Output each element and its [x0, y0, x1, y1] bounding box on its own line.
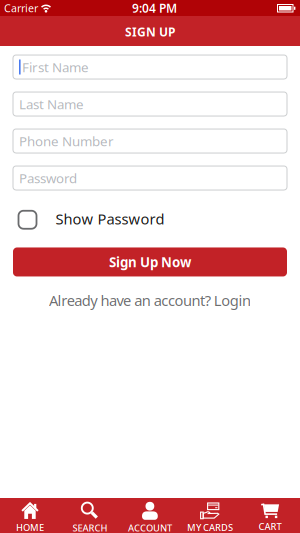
button[interactable]: First Name — [13, 55, 287, 79]
button[interactable]: HOME — [0, 498, 60, 533]
button[interactable]: Phone Number — [13, 129, 287, 153]
button[interactable]: Password — [13, 166, 287, 190]
button[interactable]: Sign Up Now — [13, 247, 287, 276]
staticText: Last Name — [19, 95, 84, 113]
staticText: Phone Number — [19, 132, 114, 150]
button[interactable]: SEARCH — [60, 498, 120, 533]
button[interactable]: Last Name — [13, 92, 287, 116]
staticText: Sign Up Now — [109, 253, 191, 271]
staticText: 9:04 PM — [132, 0, 177, 16]
staticText: Already have an account? Login — [49, 290, 251, 310]
button[interactable]: CART — [240, 498, 300, 533]
staticText: MY CARDS — [187, 521, 233, 533]
staticText: Show Password — [55, 209, 164, 228]
staticText: Carrier — [4, 1, 38, 15]
staticText: SEARCH — [72, 522, 107, 533]
staticText: HOME — [16, 521, 44, 533]
button[interactable]: Already have an account? Login — [49, 290, 251, 310]
button[interactable]: MY CARDS — [180, 498, 240, 533]
staticText: ACCOUNT — [128, 522, 172, 533]
staticText: SIGN UP — [125, 24, 175, 40]
button[interactable]: ACCOUNT — [120, 498, 180, 533]
staticText: First Name — [22, 58, 89, 76]
button[interactable]: Show Password — [0, 209, 300, 230]
staticText: Password — [19, 169, 77, 187]
staticText: CART — [258, 520, 281, 533]
